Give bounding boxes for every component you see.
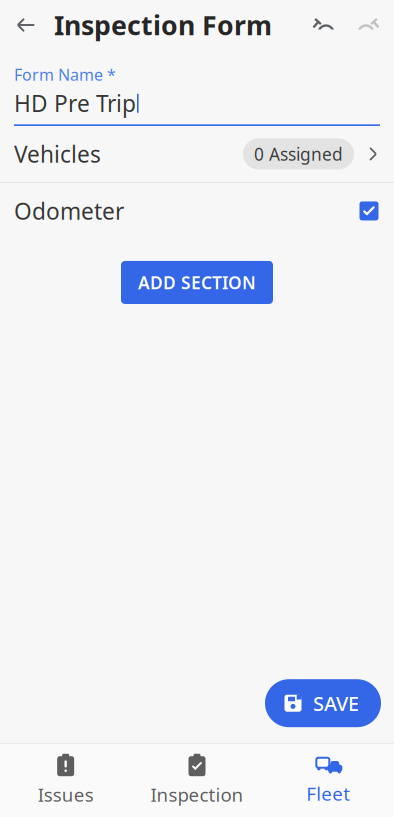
button[interactable]: Issues [0,744,131,817]
staticText: 0 Assigned [254,142,343,165]
staticText: Inspection Form [54,7,272,43]
staticText: Issues [38,782,94,807]
button[interactable]: Fleet [263,745,394,816]
staticText: Vehicles [14,139,101,169]
button[interactable]: Undo [306,2,346,48]
button[interactable]: ADD SECTION [121,261,273,304]
button[interactable]: Back [4,2,48,48]
button[interactable]: Odometer [0,183,394,239]
staticText: Fleet [306,781,350,806]
staticText: HD Pre Trip [14,88,136,118]
button[interactable]: Redo [346,2,386,48]
staticText: ADD SECTION [138,271,256,294]
staticText: Odometer [14,196,124,226]
staticText: Form Name * [14,64,116,85]
button[interactable]: SAVE [265,679,381,727]
staticText: SAVE [313,690,359,716]
staticText: Inspection [150,782,243,807]
button[interactable]: Vehicles [0,126,394,182]
button[interactable]: Inspection [131,744,263,817]
